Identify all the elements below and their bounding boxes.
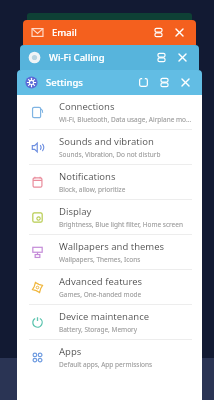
staticText: Wallpapers and themes <box>59 240 165 253</box>
staticText: Apps <box>59 345 82 358</box>
button[interactable]: Split screen view <box>156 74 173 91</box>
staticText: Games, One-handed mode <box>59 290 142 299</box>
button[interactable]: Split screen view <box>153 49 170 66</box>
button[interactable]: Close <box>177 74 194 91</box>
staticText: Brightness, Blue light filter, Home scre… <box>59 220 183 229</box>
staticText: Default apps, App permissions <box>59 360 153 369</box>
staticText: Wallpapers, Themes, Icons <box>59 255 141 264</box>
staticText: Connections <box>59 100 115 113</box>
button[interactable]: Apps <box>17 340 202 374</box>
button[interactable]: Notifications <box>17 165 202 200</box>
staticText: Display <box>59 205 92 218</box>
staticText: Settings <box>46 76 83 89</box>
staticText: Sounds and vibration <box>59 135 154 148</box>
button[interactable]: Wi-Fi Calling <box>20 45 199 70</box>
staticText: Block, allow, prioritize <box>59 185 126 194</box>
button[interactable]: Advanced features <box>17 270 202 305</box>
staticText: Sounds, Vibration, Do not disturb <box>59 150 161 159</box>
staticText: Wi-Fi Calling <box>49 51 105 64</box>
button[interactable]: Close <box>171 24 188 41</box>
staticText: Device maintenance <box>59 310 150 323</box>
button[interactable]: Settings <box>17 70 202 95</box>
staticText: Wi-Fi, Bluetooth, Data usage, Airplane m… <box>59 115 192 124</box>
button[interactable]: Split screen view <box>150 24 167 41</box>
staticText: Notifications <box>59 170 116 183</box>
button[interactable]: Email <box>23 20 196 45</box>
staticText: Battery, Storage, Memory <box>59 325 138 334</box>
button[interactable]: Sounds and vibration <box>17 130 202 165</box>
button[interactable]: Connections <box>17 95 202 130</box>
button[interactable]: Close <box>174 49 191 66</box>
staticText: Advanced features <box>59 275 143 288</box>
button[interactable]: Pop-up view <box>135 74 152 91</box>
button[interactable]: Device maintenance <box>17 305 202 340</box>
staticText: Email <box>52 26 77 39</box>
button[interactable]: Display <box>17 200 202 235</box>
button[interactable]: Wallpapers and themes <box>17 235 202 270</box>
